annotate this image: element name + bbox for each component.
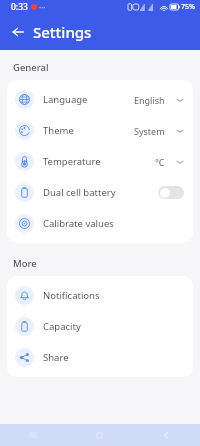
staticText: Theme bbox=[43, 124, 134, 137]
staticText: Share bbox=[43, 351, 184, 364]
staticText: Settings bbox=[33, 22, 92, 42]
staticText: General bbox=[13, 61, 49, 74]
staticText: °C bbox=[155, 156, 165, 168]
button[interactable]: Dual cell battery bbox=[7, 177, 193, 208]
button[interactable]: Back bbox=[6, 20, 30, 44]
staticText: System bbox=[134, 125, 165, 137]
button[interactable]: Share bbox=[7, 342, 193, 373]
staticText: Calibrate values bbox=[43, 217, 184, 230]
staticText: Notifications bbox=[43, 289, 184, 302]
staticText: 75% bbox=[181, 2, 195, 12]
button[interactable]: Theme bbox=[7, 115, 193, 146]
staticText: Dual cell battery bbox=[43, 186, 158, 199]
button[interactable]: Language bbox=[7, 84, 193, 115]
button[interactable]: Capacity bbox=[7, 311, 193, 342]
button[interactable]: Dual cell battery toggle bbox=[158, 186, 184, 199]
button[interactable]: Temperature bbox=[7, 146, 193, 177]
staticText: English bbox=[134, 94, 165, 106]
button[interactable]: Calibrate values bbox=[7, 208, 193, 239]
staticText: More bbox=[13, 257, 37, 270]
staticText: Capacity bbox=[43, 320, 184, 333]
staticText: ··· bbox=[39, 2, 46, 13]
button[interactable]: Notifications bbox=[7, 280, 193, 311]
staticText: 0:33 bbox=[11, 1, 28, 13]
staticText: Language bbox=[43, 93, 134, 106]
staticText: Temperature bbox=[43, 155, 155, 168]
